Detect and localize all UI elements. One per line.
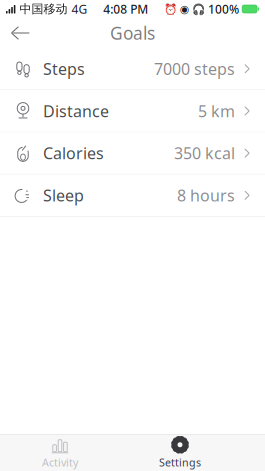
staticText: 4:08 PM <box>103 1 148 17</box>
staticText: 350 kcal <box>174 142 235 164</box>
staticText: Sleep <box>43 185 84 206</box>
button[interactable]: Sleep <box>0 175 265 217</box>
button[interactable]: Settings <box>145 435 215 471</box>
staticText: 5 km <box>198 100 235 121</box>
staticText: Activity <box>42 455 78 469</box>
button[interactable]: Steps <box>0 48 265 90</box>
staticText: Calories <box>43 142 104 164</box>
staticText: 8 hours <box>177 185 235 206</box>
staticText: Goals <box>110 21 155 44</box>
staticText: ⏰ <box>164 3 177 15</box>
staticText: 中国移动 <box>15 2 71 16</box>
button[interactable]: Distance <box>0 90 265 132</box>
button[interactable]: Activity <box>25 435 95 471</box>
button[interactable]: Calories <box>0 132 265 175</box>
staticText: ◉ <box>180 3 189 15</box>
button[interactable]: Back <box>0 18 38 48</box>
staticText: 🎧 <box>192 3 205 15</box>
staticText: 4G <box>71 1 87 17</box>
staticText: 7000 steps <box>154 58 235 79</box>
staticText: Settings <box>159 455 201 469</box>
staticText: Distance <box>43 100 109 121</box>
staticText: 100% <box>208 1 239 17</box>
staticText: Steps <box>43 58 85 79</box>
